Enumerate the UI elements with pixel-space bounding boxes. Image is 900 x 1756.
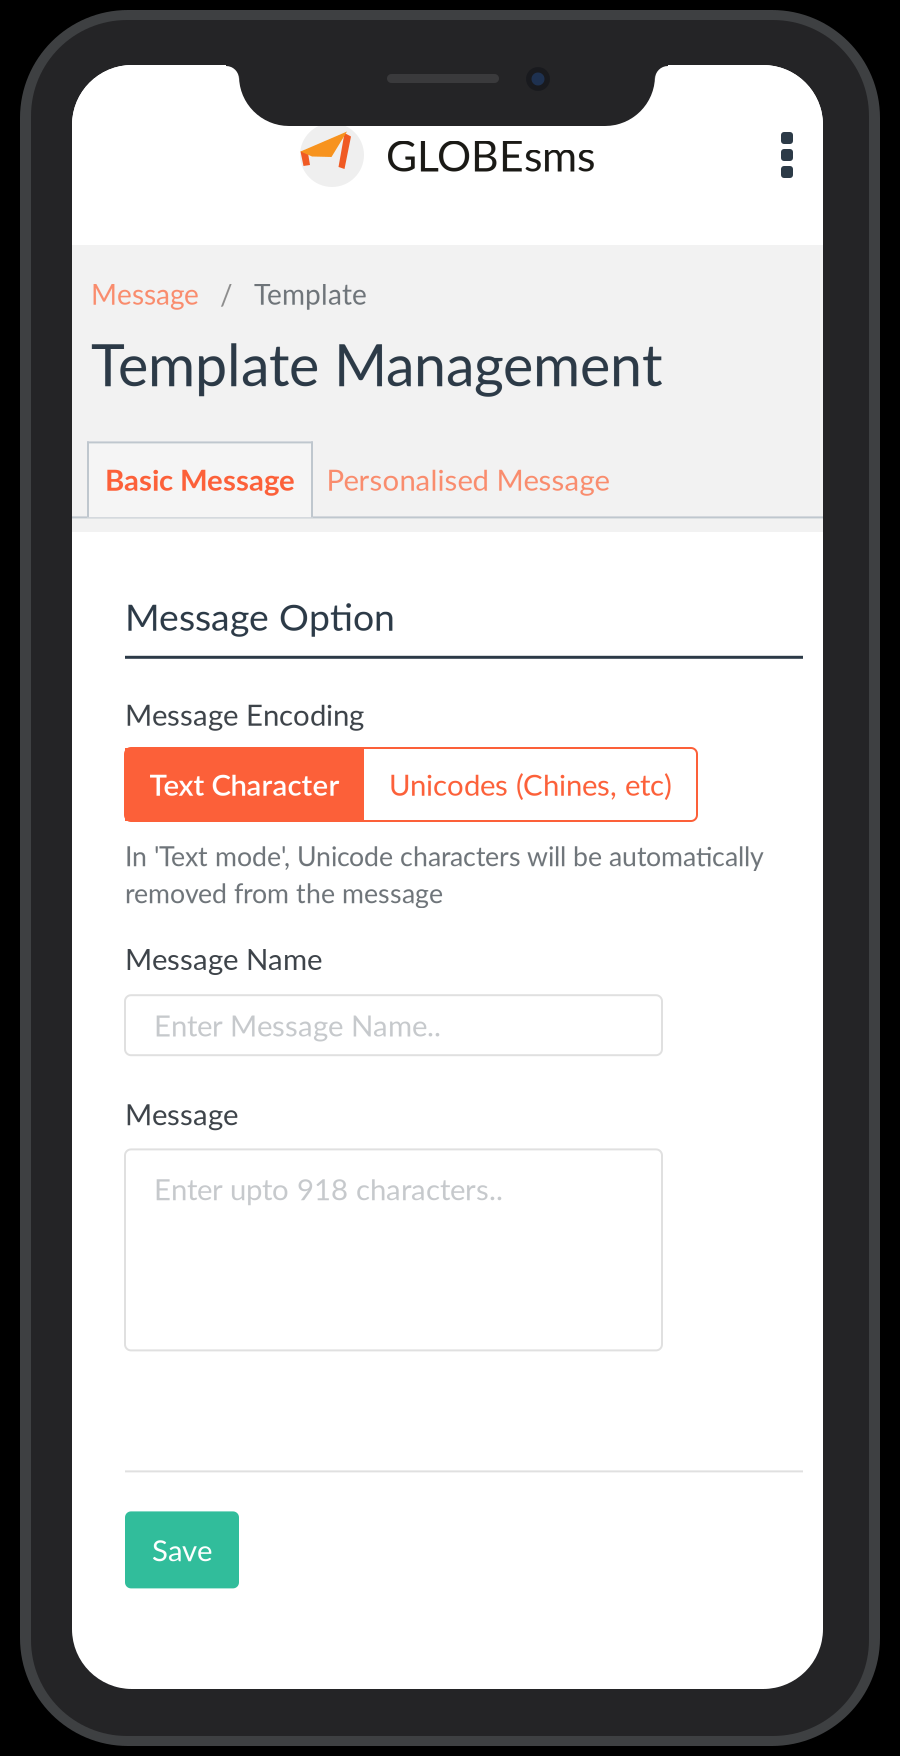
staticText: Message Option: [125, 594, 395, 639]
button[interactable]: More options: [751, 109, 823, 201]
button[interactable]: Save: [125, 1511, 239, 1588]
staticText: Message Name: [125, 941, 322, 976]
staticText: Text Character: [149, 767, 339, 802]
staticText: Save: [152, 1532, 212, 1567]
staticText: Message Encoding: [125, 697, 364, 732]
staticText: Enter upto 918 characters..: [154, 1171, 503, 1207]
staticText: Template: [254, 277, 367, 311]
staticText: /: [199, 277, 254, 311]
button[interactable]: Basic Message: [87, 441, 313, 517]
staticText: GLOBEsms: [386, 130, 595, 180]
staticText: Template Management: [91, 330, 663, 398]
staticText: Unicodes (Chines, etc): [389, 767, 672, 802]
staticText: In 'Text mode', Unicode characters will …: [125, 840, 763, 909]
staticText: Personalised Message: [326, 462, 609, 497]
staticText: Enter Message Name..: [154, 1008, 441, 1043]
button[interactable]: Unicodes (Chines, etc): [364, 748, 697, 821]
staticText: Message: [91, 277, 199, 311]
button[interactable]: Text Character: [125, 748, 364, 821]
staticText: Message: [125, 1096, 238, 1131]
staticText: Basic Message: [105, 462, 295, 497]
button[interactable]: Message: [91, 277, 199, 311]
button[interactable]: Personalised Message: [313, 441, 623, 517]
